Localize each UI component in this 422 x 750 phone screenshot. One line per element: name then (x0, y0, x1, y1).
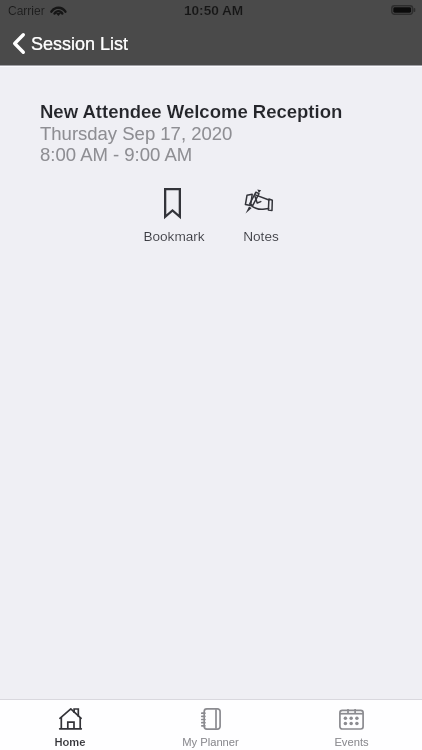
staticText: 8:00 AM - 9:00 AM (40, 144, 193, 165)
button[interactable]: Home (0, 700, 140, 750)
staticText: Home (54, 736, 86, 749)
button[interactable]: Events (281, 700, 422, 750)
staticText: 10:50 AM (184, 3, 244, 18)
button[interactable]: My Planner (140, 700, 281, 750)
staticText: Carrier (8, 4, 45, 17)
button[interactable]: Notes (231, 186, 291, 248)
staticText: Events (334, 736, 369, 749)
staticText: Notes (231, 229, 291, 244)
button[interactable]: Back to Session List (0, 26, 422, 61)
staticText: My Planner (182, 736, 239, 749)
staticText: Thursday Sep 17, 2020 (40, 123, 233, 144)
button[interactable]: Bookmark (134, 186, 214, 248)
staticText: Session List (31, 34, 129, 54)
staticText: Bookmark (134, 229, 214, 244)
staticText: New Attendee Welcome Reception (40, 101, 343, 122)
